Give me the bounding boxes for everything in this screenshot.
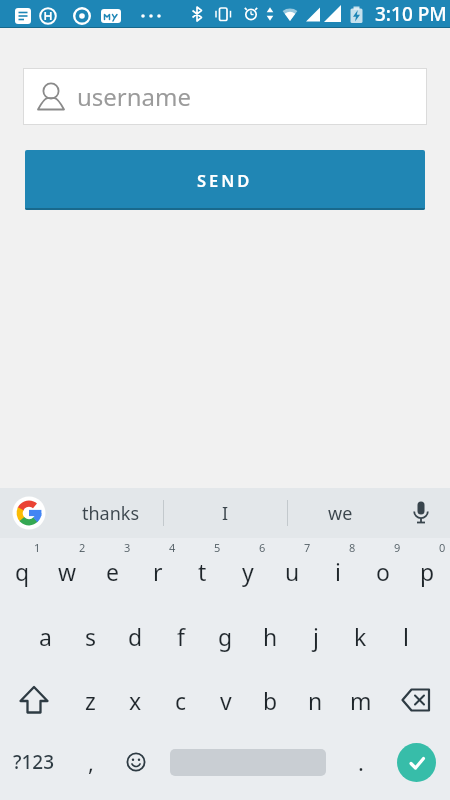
button[interactable]: v	[203, 668, 248, 732]
staticText: .	[358, 747, 364, 777]
staticText: we	[328, 501, 353, 526]
staticText: 5	[214, 540, 221, 555]
button[interactable]: m	[338, 668, 383, 732]
button[interactable]: f	[158, 604, 203, 668]
staticText: r	[153, 556, 163, 587]
button[interactable]	[113, 732, 158, 792]
staticText: n	[308, 685, 323, 716]
staticText: w	[58, 556, 77, 587]
button[interactable]: u	[270, 538, 315, 604]
staticText: username	[77, 80, 192, 113]
staticText: x	[129, 685, 142, 716]
button[interactable]: d	[113, 604, 158, 668]
button[interactable]: g	[203, 604, 248, 668]
staticText: k	[354, 621, 367, 652]
staticText: f	[177, 621, 185, 652]
button[interactable]: y	[225, 538, 270, 604]
button[interactable]: t	[180, 538, 225, 604]
staticText: z	[85, 685, 96, 716]
button[interactable]: j	[293, 604, 338, 668]
button[interactable]: z	[68, 668, 113, 732]
button[interactable]: o	[360, 538, 405, 604]
staticText: 3	[124, 540, 131, 555]
staticText: 3:10 PM	[375, 1, 447, 27]
button[interactable]	[158, 732, 338, 792]
button[interactable]: SEND	[25, 150, 425, 210]
button[interactable]: s	[68, 604, 113, 668]
button[interactable]: l	[383, 604, 428, 668]
staticText: h	[263, 621, 278, 652]
button[interactable]	[383, 668, 450, 732]
staticText: j	[313, 621, 319, 652]
button[interactable]	[397, 743, 436, 782]
button[interactable]: k	[338, 604, 383, 668]
staticText: thanks	[82, 501, 140, 526]
button[interactable]: we	[288, 488, 392, 538]
staticText: g	[218, 621, 233, 652]
staticText: I	[222, 501, 229, 526]
button[interactable]: username	[23, 68, 427, 125]
staticText: o	[376, 556, 390, 587]
button[interactable]: ?123	[0, 732, 68, 792]
staticText: e	[106, 556, 119, 587]
button[interactable]: h	[248, 604, 293, 668]
button[interactable]: e	[90, 538, 135, 604]
button[interactable]: a	[23, 604, 68, 668]
staticText: b	[263, 685, 278, 716]
button[interactable]: c	[158, 668, 203, 732]
staticText: u	[285, 556, 300, 587]
staticText: i	[335, 556, 341, 587]
button[interactable]: b	[248, 668, 293, 732]
button[interactable]: p	[405, 538, 450, 604]
staticText: SEND	[197, 169, 253, 191]
button[interactable]: i	[315, 538, 360, 604]
staticText: q	[15, 556, 30, 587]
staticText: 7	[304, 540, 311, 555]
staticText: p	[420, 556, 435, 587]
button[interactable]: I	[164, 488, 287, 538]
staticText: 6	[259, 540, 266, 555]
button[interactable]: n	[293, 668, 338, 732]
button[interactable]: ,	[68, 732, 113, 792]
staticText: ,	[88, 747, 94, 777]
button[interactable]: thanks	[58, 488, 163, 538]
staticText: 8	[349, 540, 356, 555]
staticText: v	[220, 685, 232, 716]
staticText: 0	[439, 540, 446, 555]
button[interactable]: w	[45, 538, 90, 604]
button[interactable]: x	[113, 668, 158, 732]
button[interactable]: .	[338, 732, 383, 792]
staticText: l	[403, 621, 409, 652]
staticText: 9	[394, 540, 401, 555]
button[interactable]: r	[135, 538, 180, 604]
staticText: a	[39, 621, 52, 652]
staticText: 2	[79, 540, 86, 555]
staticText: 4	[169, 540, 176, 555]
staticText: 1	[34, 540, 41, 555]
staticText: d	[128, 621, 143, 652]
staticText: t	[198, 556, 207, 587]
button[interactable]: q	[0, 538, 45, 604]
button[interactable]	[0, 488, 58, 538]
staticText: m	[350, 685, 372, 716]
button[interactable]	[392, 488, 450, 538]
button[interactable]	[0, 668, 68, 732]
staticText: y	[242, 556, 254, 587]
staticText: c	[175, 685, 187, 716]
staticText: ?123	[13, 749, 55, 775]
staticText: s	[85, 621, 97, 652]
